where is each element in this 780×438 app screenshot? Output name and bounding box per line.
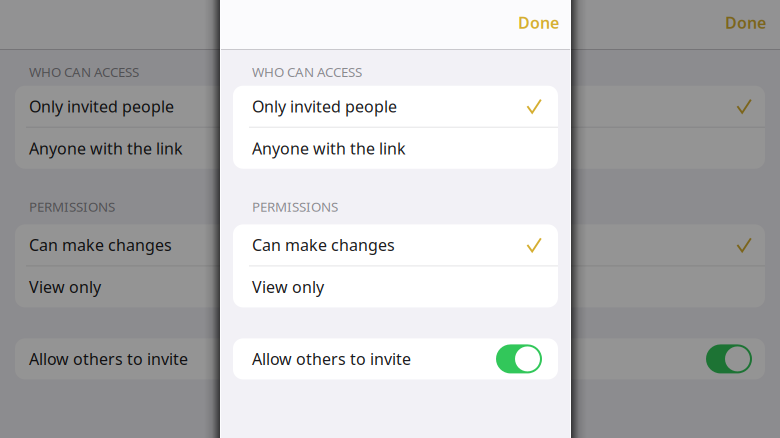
staticText: Only invited people <box>29 96 174 117</box>
staticText: Allow others to invite <box>29 348 188 369</box>
staticText: Allow others to invite <box>252 348 411 369</box>
button[interactable]: Done <box>717 6 774 43</box>
button[interactable]: Only invited people <box>233 86 558 127</box>
staticText: Done <box>518 12 559 33</box>
staticText: Done <box>725 12 766 33</box>
button[interactable]: Allow others to invite <box>15 338 765 379</box>
staticText: PERMISSIONS <box>252 198 338 215</box>
button[interactable]: Can make changes <box>15 224 765 265</box>
button[interactable]: Anyone with the link <box>233 128 558 169</box>
staticText: PERMISSIONS <box>29 198 115 215</box>
button[interactable]: View only <box>233 266 558 307</box>
button[interactable]: Done <box>510 6 567 43</box>
button[interactable]: Can make changes <box>233 224 558 265</box>
button[interactable]: Anyone with the link <box>15 128 765 169</box>
staticText: Anyone with the link <box>252 138 406 159</box>
button[interactable]: View only <box>15 266 765 307</box>
staticText: WHO CAN ACCESS <box>252 63 362 81</box>
staticText: Only invited people <box>252 96 397 117</box>
staticText: WHO CAN ACCESS <box>29 63 139 81</box>
button[interactable]: Allow others to invite <box>233 338 558 379</box>
staticText: Can make changes <box>29 234 172 255</box>
staticText: Can make changes <box>252 234 395 255</box>
staticText: View only <box>29 276 101 297</box>
staticText: Anyone with the link <box>29 138 183 159</box>
staticText: View only <box>252 276 324 297</box>
button[interactable]: Only invited people <box>15 86 765 127</box>
